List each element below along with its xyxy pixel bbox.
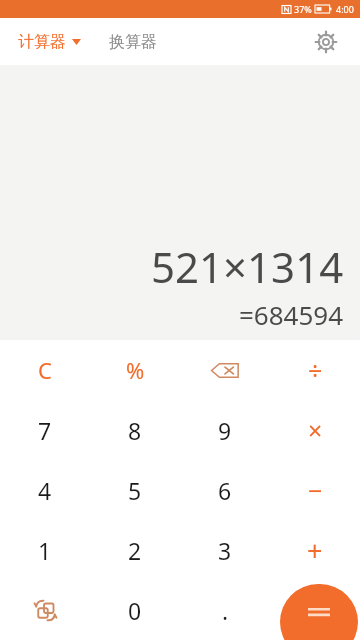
staticText: 计算器 bbox=[18, 32, 66, 52]
button[interactable]: 6 bbox=[180, 460, 270, 520]
button[interactable]: Unit converter bbox=[0, 580, 90, 640]
staticText: 6 bbox=[218, 475, 232, 506]
button[interactable]: ÷ bbox=[270, 340, 360, 400]
staticText: 3 bbox=[218, 535, 232, 566]
button[interactable]: 0 bbox=[90, 580, 180, 640]
button[interactable]: 2 bbox=[90, 520, 180, 580]
staticText: × bbox=[308, 413, 323, 447]
staticText: 5 bbox=[128, 475, 142, 506]
staticText: 8 bbox=[128, 415, 142, 446]
button[interactable]: − bbox=[270, 460, 360, 520]
button[interactable]: 9 bbox=[180, 400, 270, 460]
button[interactable]: 4 bbox=[0, 460, 90, 520]
button[interactable]: Equals bbox=[280, 584, 358, 640]
staticText: =684594 bbox=[239, 297, 344, 332]
button[interactable]: 5 bbox=[90, 460, 180, 520]
staticText: 4 bbox=[38, 475, 52, 506]
button[interactable]: 7 bbox=[0, 400, 90, 460]
button[interactable]: . bbox=[180, 580, 270, 640]
staticText: % bbox=[126, 355, 145, 385]
staticText: 2 bbox=[128, 535, 142, 566]
staticText: ÷ bbox=[308, 353, 323, 387]
staticText: 9 bbox=[218, 415, 232, 446]
button[interactable]: Settings bbox=[306, 22, 346, 62]
button[interactable]: × bbox=[270, 400, 360, 460]
staticText: + bbox=[307, 532, 323, 569]
staticText: 521×1314 bbox=[151, 238, 344, 295]
staticText: . bbox=[222, 595, 229, 626]
staticText: − bbox=[308, 473, 323, 507]
button[interactable]: 1 bbox=[0, 520, 90, 580]
button[interactable]: + bbox=[270, 520, 360, 580]
button[interactable]: C bbox=[0, 340, 90, 400]
staticText: 37% bbox=[294, 3, 312, 15]
staticText: 0 bbox=[128, 595, 142, 626]
button[interactable]: 计算器 bbox=[16, 26, 83, 58]
button[interactable]: % bbox=[90, 340, 180, 400]
button[interactable]: Backspace bbox=[180, 340, 270, 400]
staticText: 1 bbox=[38, 535, 52, 566]
button[interactable]: 3 bbox=[180, 520, 270, 580]
staticText: 7 bbox=[38, 415, 52, 446]
staticText: 4:00 bbox=[336, 3, 354, 15]
button[interactable]: 换算器 bbox=[105, 26, 161, 58]
staticText: 换算器 bbox=[109, 32, 157, 52]
staticText: C bbox=[38, 355, 52, 385]
button[interactable]: 8 bbox=[90, 400, 180, 460]
